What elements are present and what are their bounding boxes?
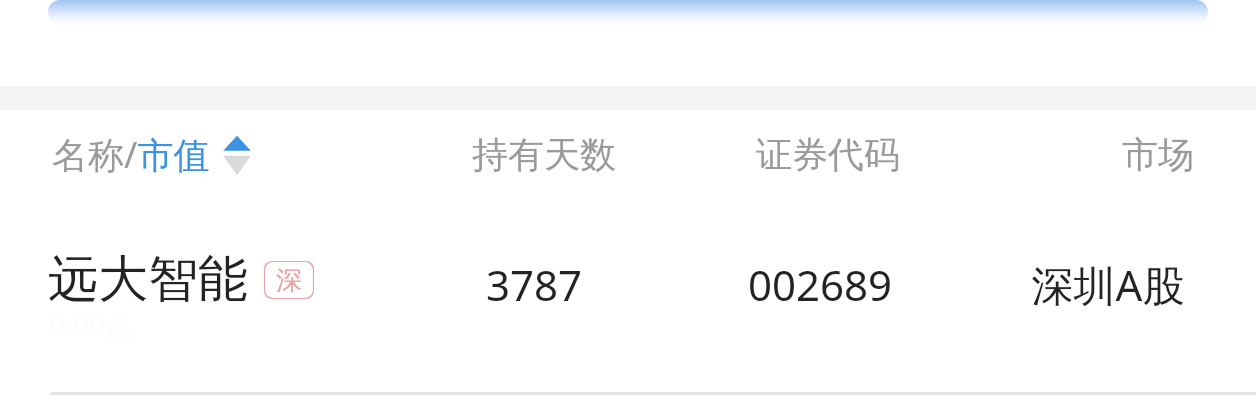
staticText: 名称/市值 — [52, 130, 210, 179]
staticText: 市场 — [1122, 132, 1194, 177]
staticText: 证券代码 — [756, 132, 900, 177]
other: Sort by market value — [222, 134, 252, 176]
staticText: 深圳A股 — [960, 256, 1256, 313]
staticText: 远大智能 — [48, 248, 248, 311]
staticText: 深 — [276, 264, 302, 297]
staticText: 3787 — [420, 256, 648, 313]
button[interactable]: 证券代码 — [750, 124, 906, 185]
button[interactable]: 市场 — [1116, 124, 1200, 185]
staticText: 002689 — [690, 256, 950, 313]
staticText: 持有天数 — [472, 132, 616, 177]
button[interactable]: 持有天数 — [466, 124, 622, 185]
button[interactable]: 名称/市值 — [44, 124, 260, 185]
button[interactable]: 远大智能 — [0, 198, 1256, 394]
